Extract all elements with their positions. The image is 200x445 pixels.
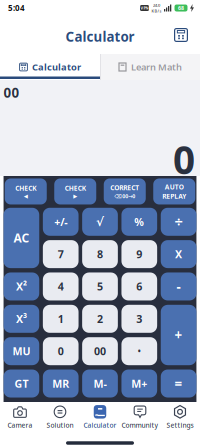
staticText: Community	[121, 421, 158, 430]
staticText: M-	[93, 376, 106, 391]
staticText: 3	[136, 312, 142, 326]
staticText: ▶	[73, 193, 77, 199]
staticText: 9	[136, 247, 142, 261]
staticText: X²	[16, 279, 27, 294]
button[interactable]: Camera	[0, 401, 40, 433]
button[interactable]: X²	[3, 272, 39, 300]
button[interactable]: Solution	[40, 401, 80, 433]
staticText: 0	[173, 134, 195, 185]
button[interactable]: CHECK	[54, 178, 96, 204]
staticText: Calculator	[83, 421, 116, 430]
staticText: X	[175, 247, 182, 261]
button[interactable]: Calculator	[0, 54, 100, 80]
button[interactable]: ÷	[161, 208, 196, 236]
staticText: =	[175, 375, 183, 392]
button[interactable]: +/-	[43, 208, 79, 236]
staticText: ◀	[24, 193, 28, 199]
button[interactable]: 5	[82, 272, 118, 300]
button[interactable]: Learn Math	[100, 54, 200, 80]
staticText: Calculator	[65, 28, 134, 45]
staticText: 7	[58, 247, 64, 261]
staticText: 0	[58, 344, 64, 358]
staticText: Settings	[166, 421, 193, 430]
button[interactable]: AUTO	[153, 178, 195, 204]
staticText: √	[96, 215, 104, 229]
button[interactable]: M+	[121, 369, 157, 397]
staticText: M+	[131, 376, 147, 391]
staticText: 68	[178, 4, 184, 12]
staticText: REPLAY	[162, 192, 186, 201]
staticText: X³	[16, 312, 27, 326]
staticText: 8	[97, 247, 103, 261]
staticText: GT	[14, 376, 28, 391]
button[interactable]: •	[121, 337, 157, 365]
button[interactable]: -	[161, 272, 196, 300]
staticText: 6	[136, 279, 142, 294]
button[interactable]: 3	[121, 305, 157, 333]
staticText: 1	[58, 312, 64, 326]
staticText: Calculator	[32, 61, 81, 73]
button[interactable]: X³	[3, 305, 39, 333]
staticText: 5:04	[8, 3, 25, 13]
button[interactable]: =	[161, 369, 196, 397]
button[interactable]: 8	[82, 240, 118, 268]
staticText: +/-	[54, 215, 67, 229]
button[interactable]: M-	[82, 369, 118, 397]
staticText: MR	[52, 376, 69, 391]
staticText: 00	[94, 344, 106, 358]
staticText: MU	[12, 344, 30, 358]
staticText: CHECK	[65, 184, 86, 193]
button[interactable]: AC	[3, 208, 39, 268]
button[interactable]: X	[161, 240, 196, 268]
staticText: 2	[97, 312, 103, 326]
button[interactable]: CHECK	[5, 178, 47, 204]
button[interactable]: MU	[3, 337, 39, 365]
staticText: KB/s	[151, 8, 161, 13]
staticText: -	[177, 278, 181, 295]
button[interactable]: Settings	[160, 401, 200, 433]
staticText: CORRECT	[110, 183, 139, 192]
staticText: +	[175, 326, 183, 344]
button[interactable]: %	[121, 208, 157, 236]
button[interactable]: CORRECT	[104, 178, 146, 204]
button[interactable]: 0	[43, 337, 79, 365]
staticText: AC	[13, 230, 29, 246]
staticText: ÷	[175, 212, 183, 231]
staticText: Learn Math	[131, 61, 182, 73]
staticText: Solution	[46, 421, 73, 430]
staticText: AUTO	[165, 182, 184, 191]
staticText: ⌫00→0	[114, 193, 135, 200]
staticText: Camera	[7, 421, 32, 430]
button[interactable]: 4	[43, 272, 79, 300]
button[interactable]: Community	[120, 401, 160, 433]
staticText: VPN	[140, 5, 148, 11]
staticText: %	[134, 215, 144, 229]
button[interactable]: Calculator settings	[174, 28, 200, 42]
staticText: CHECK	[15, 184, 36, 193]
button[interactable]: MR	[43, 369, 79, 397]
button[interactable]: GT	[3, 369, 39, 397]
button[interactable]: 7	[43, 240, 79, 268]
staticText: 4	[58, 279, 64, 294]
staticText: 24.0	[153, 2, 160, 8]
staticText: •	[138, 346, 141, 356]
staticText: 00	[3, 84, 19, 101]
button[interactable]: Calculator	[80, 401, 120, 433]
button[interactable]: √	[82, 208, 118, 236]
staticText: 5	[97, 279, 103, 294]
button[interactable]: 00	[82, 337, 118, 365]
button[interactable]: 6	[121, 272, 157, 300]
button[interactable]: 2	[82, 305, 118, 333]
button[interactable]: 1	[43, 305, 79, 333]
button[interactable]: +	[161, 305, 196, 365]
button[interactable]: 9	[121, 240, 157, 268]
